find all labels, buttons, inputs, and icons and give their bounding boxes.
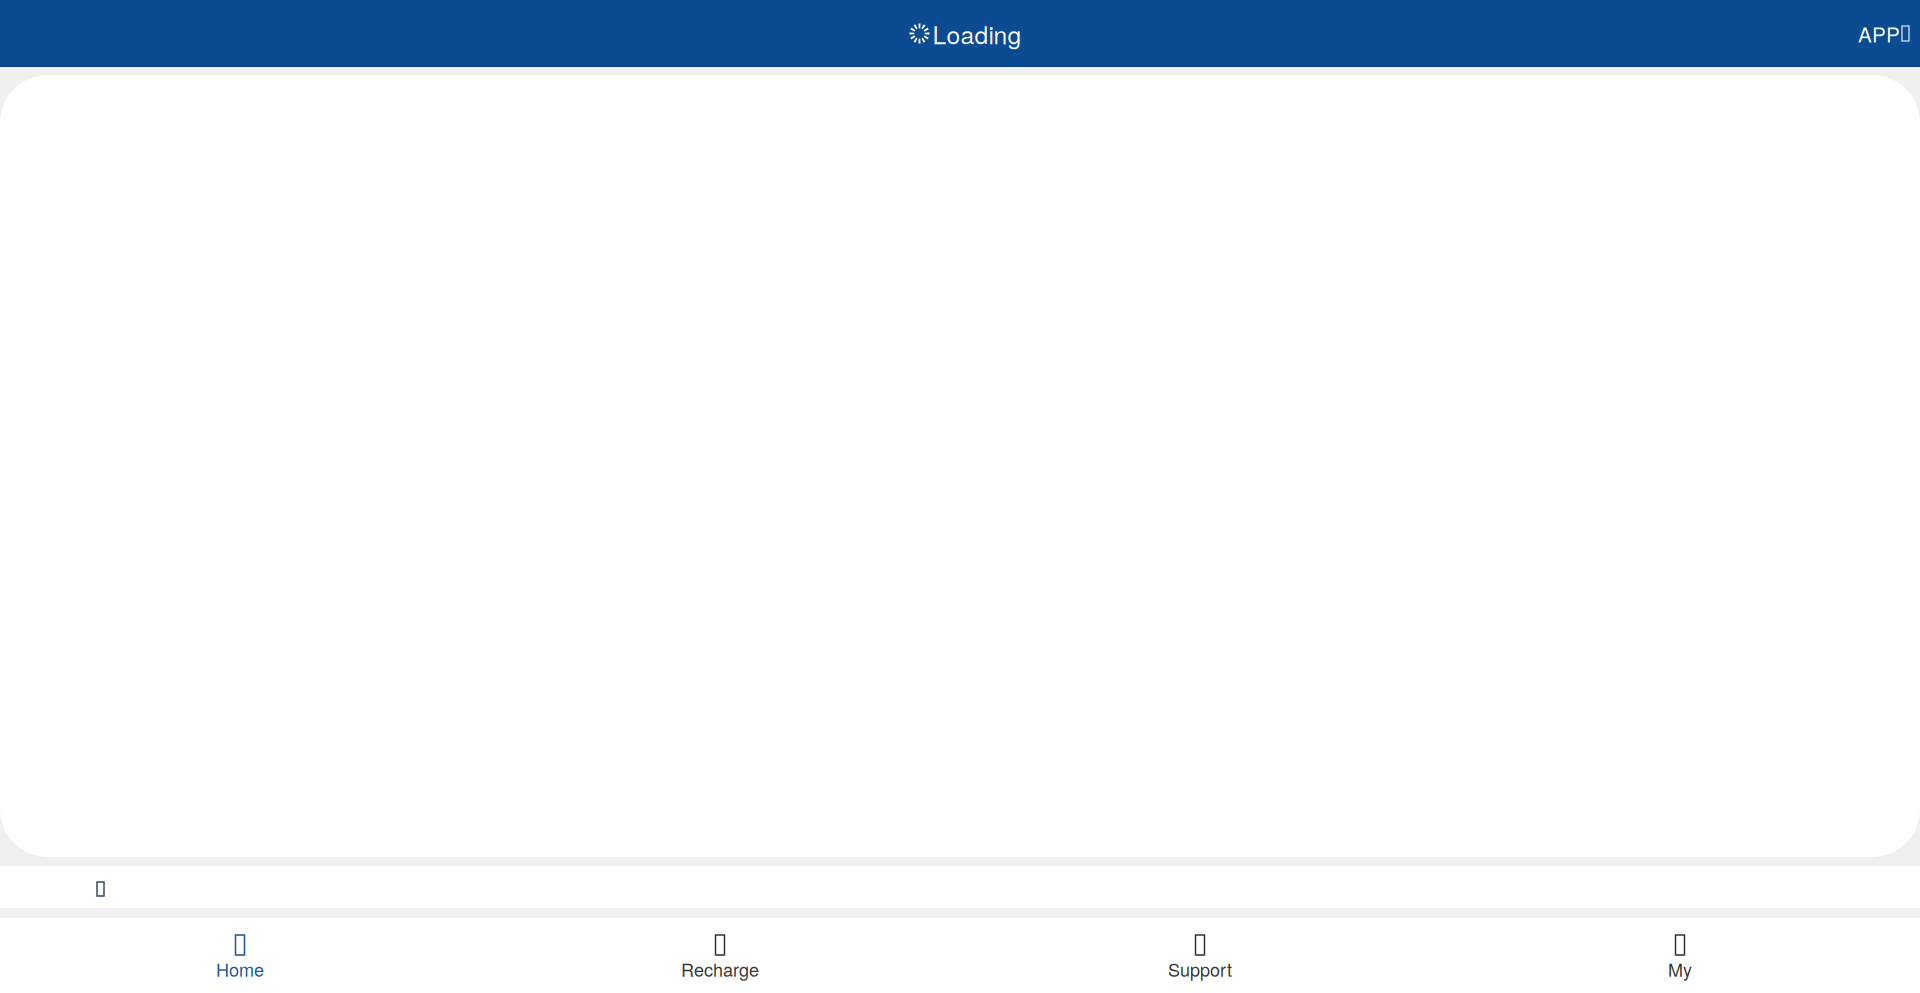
button[interactable]: Recharge xyxy=(480,918,960,993)
staticText: Home xyxy=(216,956,264,982)
staticText: My xyxy=(1668,956,1692,982)
button[interactable]: My xyxy=(1440,918,1920,993)
staticText: APP xyxy=(1858,19,1900,48)
button[interactable]: Home xyxy=(0,918,480,993)
staticText: Recharge xyxy=(681,956,759,982)
button[interactable]: Support xyxy=(960,918,1440,993)
button[interactable]: Download APP xyxy=(1847,11,1920,56)
staticText: Loading xyxy=(932,16,1021,51)
staticText: Support xyxy=(1168,956,1232,982)
button[interactable]: Customer service xyxy=(85,874,116,904)
